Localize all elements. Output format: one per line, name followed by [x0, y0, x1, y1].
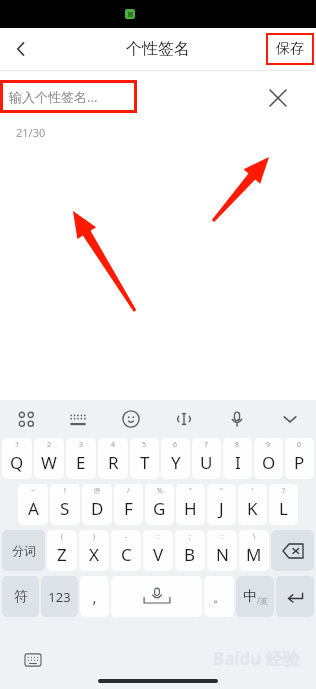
button[interactable]: @: [82, 484, 112, 525]
staticText: L: [279, 497, 288, 520]
button[interactable]: %: [145, 484, 174, 525]
button[interactable]: 7: [192, 438, 221, 479]
staticText: Q: [10, 451, 24, 474]
staticText: W: [41, 451, 57, 474]
button[interactable]: Text edit: [157, 400, 210, 438]
button[interactable]: 123: [41, 576, 78, 617]
button[interactable]: ~: [18, 484, 48, 525]
button[interactable]: ;: [175, 530, 205, 571]
button[interactable]: 保存: [266, 33, 314, 65]
button[interactable]: ": [176, 484, 205, 525]
staticText: C: [121, 543, 132, 566]
staticText: -: [125, 532, 128, 542]
staticText: R: [108, 451, 119, 474]
button[interactable]: Switch keyboard: [22, 649, 44, 671]
button[interactable]: Clear: [264, 84, 292, 112]
staticText: J: [219, 497, 224, 520]
staticText: /: [127, 486, 130, 496]
staticText: 符: [14, 588, 28, 606]
staticText: @: [94, 486, 101, 496]
staticText: S: [60, 497, 70, 520]
staticText: (: [61, 532, 64, 542]
button[interactable]: Space: [111, 576, 202, 617]
staticText: Z: [57, 543, 67, 566]
staticText: ": [220, 486, 223, 496]
staticText: 9: [266, 440, 271, 450]
button[interactable]: 0: [285, 438, 314, 479]
staticText: 2: [47, 440, 52, 450]
staticText: U: [200, 451, 213, 474]
button[interactable]: Enter: [276, 576, 314, 617]
staticText: 中: [243, 588, 257, 606]
button[interactable]: -: [111, 530, 141, 571]
button[interactable]: ): [79, 530, 109, 571]
button[interactable]: ": [207, 484, 236, 525]
button[interactable]: 3: [66, 438, 96, 479]
staticText: X: [89, 543, 99, 566]
staticText: ): [93, 532, 96, 542]
button[interactable]: 6: [161, 438, 190, 479]
staticText: P: [294, 451, 305, 474]
staticText: B: [184, 543, 196, 566]
button[interactable]: 中: [236, 576, 274, 617]
button[interactable]: Back: [0, 28, 42, 70]
button[interactable]: /: [114, 484, 143, 525]
button[interactable]: 9: [254, 438, 283, 479]
staticText: H: [184, 497, 197, 520]
staticText: I: [235, 451, 241, 474]
button[interactable]: 输入个性签名...: [0, 80, 137, 113]
button[interactable]: Emoji: [104, 400, 157, 438]
button[interactable]: :: [143, 530, 173, 571]
staticText: ?: [282, 486, 286, 496]
staticText: G: [153, 497, 166, 520]
staticText: 4: [111, 440, 116, 450]
button[interactable]: ,: [80, 576, 109, 617]
button[interactable]: 2: [34, 438, 64, 479]
button[interactable]: \: [239, 530, 269, 571]
staticText: Baidu 经验: [213, 647, 300, 670]
button[interactable]: ?: [269, 484, 298, 525]
staticText: 个性签名: [126, 39, 190, 59]
button[interactable]: :: [207, 530, 237, 571]
staticText: 21/30: [16, 125, 46, 140]
staticText: 123: [48, 588, 71, 606]
staticText: ~: [31, 486, 36, 496]
staticText: !: [64, 486, 66, 496]
staticText: :: [157, 532, 159, 542]
button[interactable]: ': [238, 484, 267, 525]
staticText: M: [246, 543, 262, 566]
staticText: E: [76, 451, 86, 474]
staticText: ': [252, 486, 254, 496]
button[interactable]: 分词: [2, 530, 45, 571]
staticText: 输入个性签名...: [9, 88, 98, 106]
staticText: D: [91, 497, 104, 520]
staticText: 。: [213, 589, 226, 605]
staticText: 5: [142, 440, 147, 450]
staticText: ,: [92, 587, 97, 607]
button[interactable]: 8: [223, 438, 252, 479]
button[interactable]: Voice input: [210, 400, 263, 438]
button[interactable]: 4: [98, 438, 128, 479]
button[interactable]: Backspace: [271, 530, 314, 571]
staticText: 8: [235, 440, 240, 450]
staticText: ;: [189, 532, 191, 542]
button[interactable]: Hide keyboard: [263, 400, 316, 438]
button[interactable]: !: [50, 484, 80, 525]
button[interactable]: Keyboard layout: [52, 400, 104, 438]
staticText: 分词: [12, 543, 36, 558]
staticText: ": [189, 486, 192, 496]
staticText: A: [28, 497, 39, 520]
button[interactable]: Apps: [0, 400, 52, 438]
button[interactable]: 1: [2, 438, 32, 479]
staticText: /英: [257, 595, 268, 606]
staticText: K: [247, 497, 258, 520]
button[interactable]: 符: [2, 576, 39, 617]
staticText: 6: [173, 440, 178, 450]
button[interactable]: 。: [204, 576, 234, 617]
staticText: Y: [171, 451, 181, 474]
staticText: T: [140, 451, 150, 474]
button[interactable]: (: [47, 530, 77, 571]
staticText: O: [262, 451, 276, 474]
button[interactable]: 5: [130, 438, 159, 479]
staticText: N: [216, 543, 229, 566]
